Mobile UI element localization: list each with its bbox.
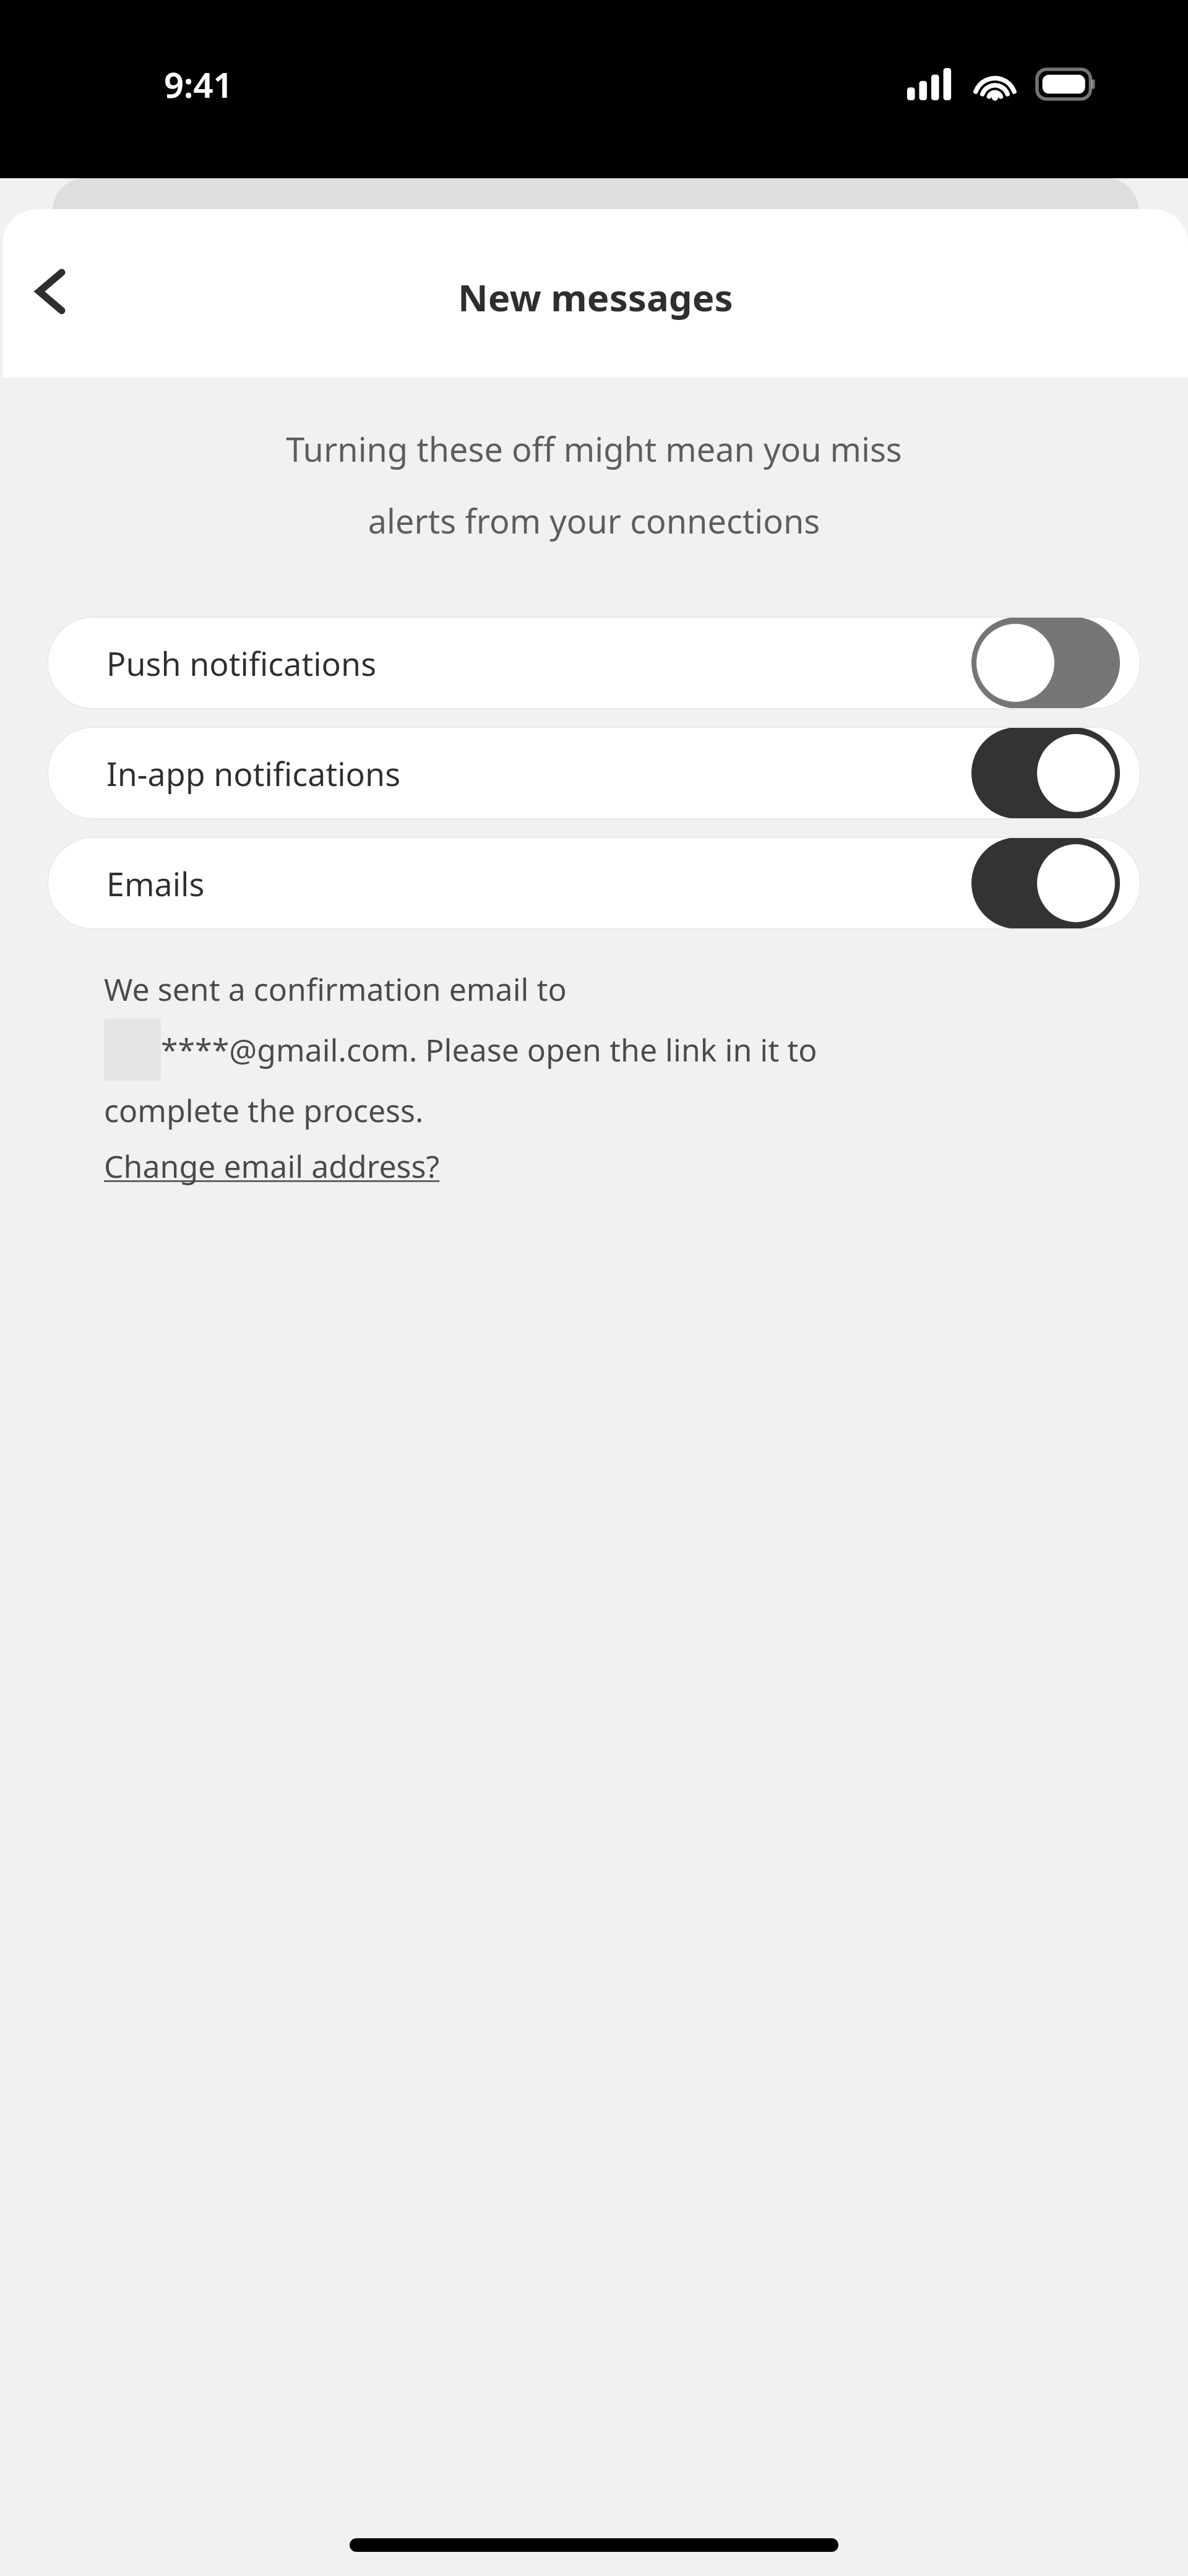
- staticText: We sent a confirmation email to: [104, 968, 567, 1010]
- staticText: New messages: [458, 272, 733, 322]
- button[interactable]: Emails: [47, 837, 1141, 930]
- button[interactable]: In-app notifications: [47, 727, 1141, 819]
- button[interactable]: Push notifications: [47, 616, 1141, 709]
- button[interactable]: Change email address?: [104, 1145, 440, 1187]
- staticText: Change email address?: [104, 1145, 440, 1187]
- staticText: In-app notifications: [106, 751, 971, 795]
- staticText: ****@gmail.com. Please open the link in …: [161, 1029, 817, 1071]
- button[interactable]: Back: [14, 254, 89, 329]
- staticText: Turning these off might mean you miss al…: [74, 426, 1114, 543]
- staticText: complete the process.: [104, 1089, 424, 1131]
- staticText: 9:41: [164, 61, 233, 108]
- staticText: Emails: [106, 862, 971, 905]
- staticText: Push notifications: [106, 641, 971, 685]
